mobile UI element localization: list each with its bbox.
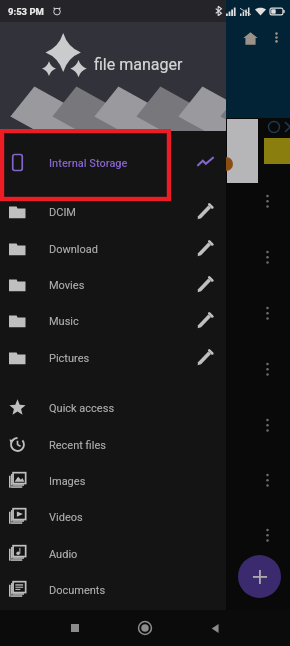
staticText: Audio bbox=[49, 548, 78, 561]
button[interactable]: Audio bbox=[0, 535, 226, 571]
button[interactable]: Recents bbox=[60, 613, 90, 643]
button[interactable]: More options bbox=[259, 526, 276, 546]
button[interactable]: Quick access bbox=[0, 389, 226, 425]
staticText: Recent files bbox=[49, 439, 106, 452]
staticText: Videos bbox=[49, 511, 83, 524]
button[interactable]: Rename bbox=[190, 196, 220, 226]
button[interactable]: Music bbox=[0, 302, 226, 338]
button[interactable]: More options bbox=[259, 471, 276, 491]
button[interactable]: Download bbox=[0, 230, 226, 266]
button[interactable]: Videos bbox=[0, 498, 226, 534]
staticText: Documents bbox=[49, 584, 106, 597]
button[interactable]: Movies bbox=[0, 266, 226, 302]
staticText: Music bbox=[49, 315, 79, 328]
staticText: 9:53 PM bbox=[8, 6, 44, 17]
staticText: Internal Storage bbox=[49, 157, 128, 170]
button[interactable]: Rename bbox=[190, 233, 220, 263]
staticText: Download bbox=[49, 243, 98, 256]
button[interactable]: Rename bbox=[190, 342, 220, 372]
staticText: Pictures bbox=[49, 352, 90, 365]
button[interactable]: Documents bbox=[0, 571, 226, 607]
button[interactable]: DCIM bbox=[0, 193, 226, 229]
staticText: Quick access bbox=[49, 402, 115, 415]
button[interactable]: Back bbox=[200, 613, 230, 643]
button[interactable]: More options bbox=[259, 416, 276, 436]
button[interactable]: More options bbox=[259, 304, 276, 324]
button[interactable]: More options bbox=[263, 24, 289, 50]
button[interactable]: Home bbox=[236, 24, 264, 52]
button[interactable]: Rename bbox=[190, 269, 220, 299]
staticText: Images bbox=[49, 475, 86, 488]
button[interactable]: More options bbox=[259, 192, 276, 212]
button[interactable]: More options bbox=[259, 248, 276, 268]
button[interactable]: Rename bbox=[190, 305, 220, 335]
staticText: Movies bbox=[49, 279, 85, 292]
button[interactable]: Images bbox=[0, 462, 226, 498]
button[interactable]: Pictures bbox=[0, 339, 226, 375]
button[interactable]: Add bbox=[238, 555, 281, 598]
button[interactable]: Internal Storage bbox=[0, 144, 226, 180]
button[interactable]: Recent files bbox=[0, 426, 226, 462]
staticText: file manager bbox=[94, 55, 183, 74]
button[interactable]: Home bbox=[130, 613, 160, 643]
staticText: DCIM bbox=[49, 206, 76, 219]
button[interactable]: More options bbox=[259, 360, 276, 380]
button[interactable]: Storage info bbox=[190, 147, 220, 177]
